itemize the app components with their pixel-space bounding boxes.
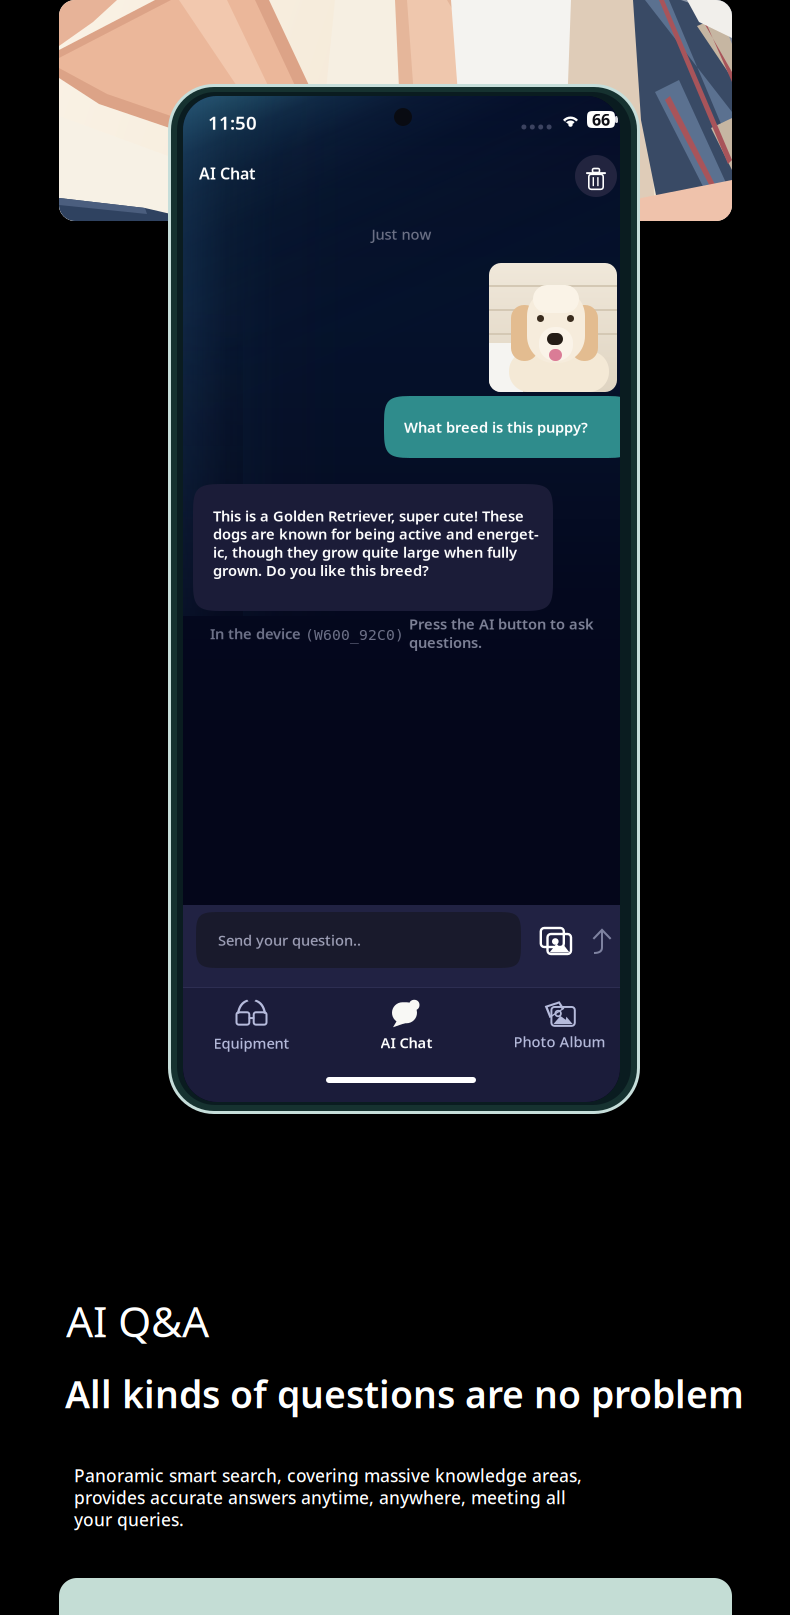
button[interactable]: Equipment bbox=[183, 995, 320, 1057]
button[interactable]: AI Chat bbox=[338, 995, 475, 1057]
staticText: 66 bbox=[592, 109, 610, 130]
staticText: What breed is this puppy? bbox=[404, 417, 588, 437]
staticText: All kinds of questions are no problem bbox=[65, 1369, 744, 1418]
button[interactable]: Send bbox=[592, 928, 612, 955]
staticText: AI Chat bbox=[199, 163, 255, 184]
staticText: Panoramic smart search, covering massive… bbox=[74, 1464, 582, 1531]
staticText: Press the AI button to ask questions. bbox=[409, 614, 594, 652]
button[interactable]: Send your question.. bbox=[196, 912, 521, 968]
staticText: 11:50 bbox=[208, 110, 257, 135]
staticText: AI Chat bbox=[380, 1033, 432, 1052]
staticText: Send your question.. bbox=[218, 930, 361, 950]
staticText: This is a Golden Retriever, super cute! … bbox=[213, 506, 539, 580]
button[interactable]: Attach photo bbox=[540, 927, 572, 955]
staticText: AI Q&A bbox=[66, 1292, 209, 1349]
button[interactable]: Clear conversation bbox=[575, 155, 617, 197]
staticText: In the device bbox=[210, 624, 301, 643]
staticText: (W600_92C0) bbox=[305, 627, 404, 643]
staticText: Just now bbox=[371, 224, 431, 244]
button[interactable]: Photo Album bbox=[491, 995, 628, 1057]
staticText: Equipment bbox=[213, 1033, 289, 1053]
staticText: Photo Album bbox=[513, 1032, 605, 1051]
